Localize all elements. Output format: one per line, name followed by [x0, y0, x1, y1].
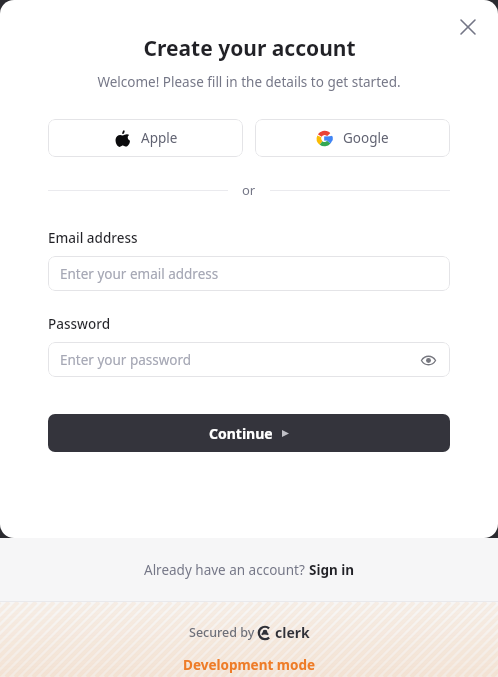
button[interactable]: Apple [48, 119, 243, 157]
staticText: Welcome! Please fill in the details to g… [97, 73, 401, 91]
staticText: Password [48, 315, 111, 333]
staticText: Sign in [309, 561, 355, 579]
button[interactable]: Enter your password [48, 342, 450, 377]
staticText: Already have an account? [144, 561, 309, 579]
button[interactable]: Continue [48, 414, 450, 452]
staticText: Secured by [189, 624, 258, 641]
staticText: Apple [141, 129, 178, 147]
button[interactable]: Show password [418, 350, 438, 370]
button[interactable]: Sign in [309, 561, 355, 579]
button[interactable]: Close [452, 11, 484, 43]
button[interactable]: Enter your email address [48, 256, 450, 291]
staticText: clerk [275, 623, 310, 642]
staticText: Development mode [183, 656, 315, 674]
staticText: Google [343, 129, 389, 147]
staticText: Email address [48, 229, 138, 247]
staticText: Create your account [143, 34, 356, 63]
staticText: or [242, 181, 256, 199]
staticText: Continue [209, 424, 273, 443]
staticText: Enter your password [60, 351, 192, 369]
staticText: Enter your email address [60, 265, 219, 283]
button[interactable]: Google [255, 119, 450, 157]
